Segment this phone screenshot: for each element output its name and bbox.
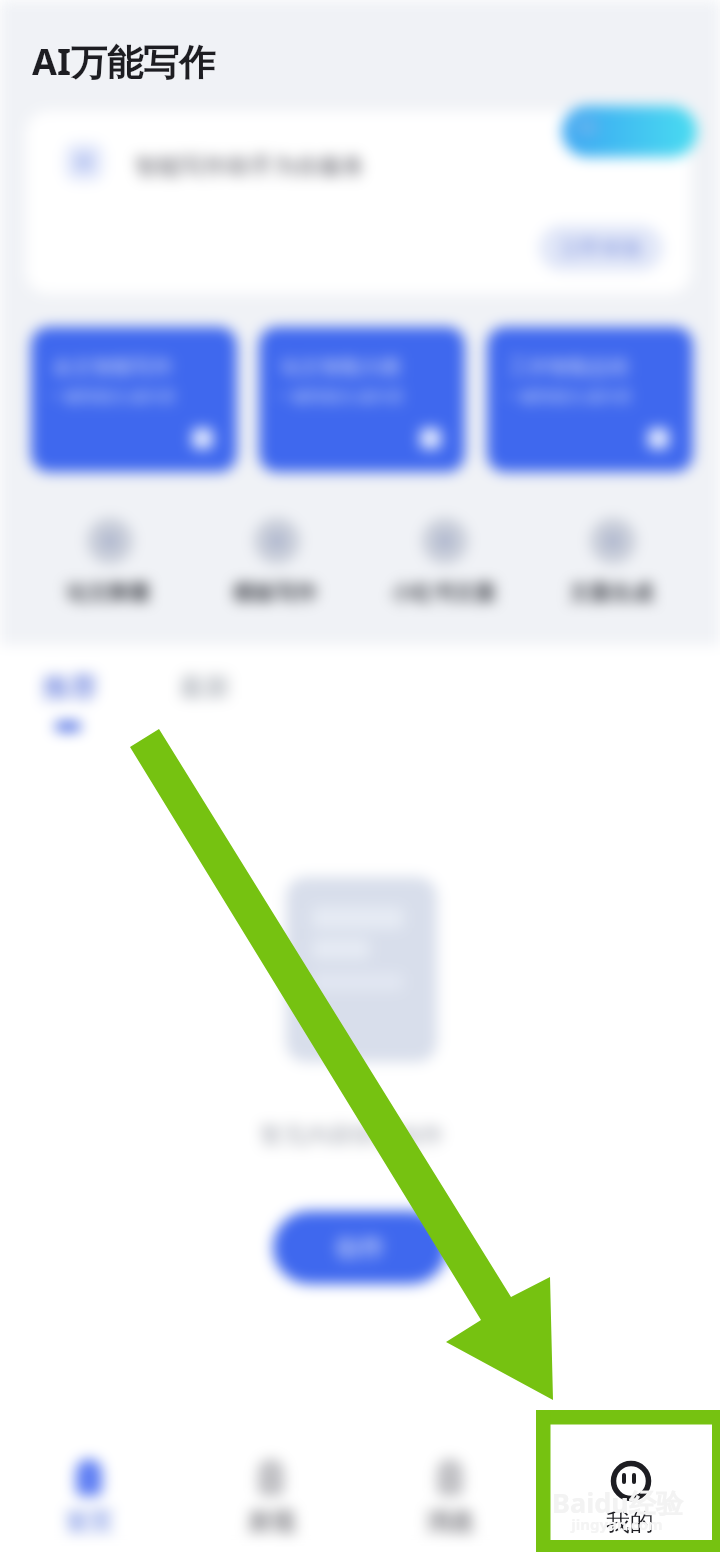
staticText: 全文智能写作 — [52, 355, 172, 380]
staticText: 立即体验 — [559, 235, 643, 261]
button[interactable]: 论文降重 — [52, 508, 168, 616]
other: 我的 — [609, 1459, 653, 1503]
staticText: 论文降重 — [66, 580, 150, 606]
staticText: 首页 — [65, 1507, 113, 1537]
staticText: jingyan.com — [571, 1514, 663, 1534]
button[interactable]: 全文智能写作 — [31, 327, 237, 472]
staticText: 最新 — [179, 671, 231, 704]
button[interactable]: 推荐 — [0, 657, 250, 717]
button[interactable]: 最新 — [25, 657, 385, 717]
staticText: 智能写作助手为你服务 — [135, 152, 365, 181]
staticText: 工作智能总结 — [508, 355, 628, 380]
staticText: 论文智能大纲 — [280, 355, 400, 380]
button[interactable]: 文案生成 — [555, 508, 671, 616]
button[interactable]: 我的 — [572, 1446, 688, 1546]
button[interactable]: 创作 — [273, 1211, 447, 1284]
staticText: 一键智能生成内容 — [48, 387, 176, 407]
staticText: 创作 — [335, 1232, 385, 1263]
button[interactable]: 小红书文案 — [387, 508, 503, 616]
button[interactable]: 发现 — [213, 1446, 329, 1546]
staticText: 我的 — [606, 1507, 654, 1537]
button[interactable]: 会员特权 — [562, 106, 697, 157]
staticText: 一键智能生成内容 — [504, 387, 632, 407]
staticText: Baidu经验 — [552, 1484, 683, 1521]
staticText: 推荐 — [42, 670, 98, 705]
button[interactable]: AI 写作助手 — [26, 111, 691, 294]
staticText: 文案生成 — [569, 580, 653, 606]
staticText: 消息 — [426, 1507, 474, 1537]
staticText: 一键智能生成内容 — [276, 387, 404, 407]
button[interactable]: 论文智能大纲 — [259, 327, 465, 472]
staticText: AI万能写作 — [32, 37, 215, 86]
staticText: 小红书文案 — [391, 580, 496, 606]
button[interactable]: 立即体验 — [539, 225, 663, 271]
button[interactable]: 模板写作 — [219, 508, 335, 616]
staticText: 发现 — [247, 1507, 295, 1537]
staticText: 暂无内容快去创作 — [260, 1121, 444, 1150]
button[interactable]: 消息 — [392, 1446, 508, 1546]
button[interactable]: 首页 — [31, 1446, 147, 1546]
button[interactable]: 工作智能总结 — [487, 327, 693, 472]
staticText: 模板写作 — [233, 580, 317, 606]
